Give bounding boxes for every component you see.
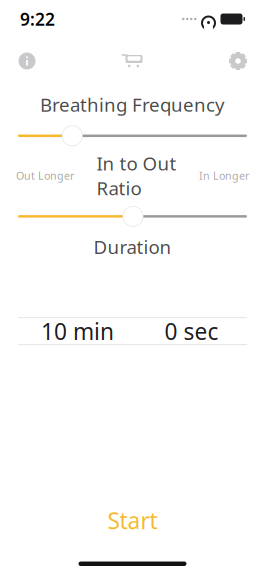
staticText: In Longer xyxy=(199,168,249,183)
staticText: In to Out Ratio xyxy=(96,151,176,200)
staticText: Out Longer xyxy=(16,168,74,183)
staticText: Start xyxy=(107,505,157,535)
staticText: 10 min xyxy=(41,316,114,346)
button[interactable]: Settings xyxy=(205,44,249,78)
button[interactable]: Store xyxy=(110,44,154,78)
button[interactable]: Start xyxy=(0,503,265,537)
staticText: Breathing Frequency xyxy=(40,92,225,117)
button[interactable]: Information xyxy=(16,44,60,78)
staticText: 11 min xyxy=(47,341,108,366)
staticText: 9 min xyxy=(52,297,102,322)
staticText: 9:22 xyxy=(20,7,55,30)
staticText: 15 sec xyxy=(163,341,219,366)
staticText: 0 sec xyxy=(164,316,218,346)
staticText: Duration xyxy=(93,234,171,259)
